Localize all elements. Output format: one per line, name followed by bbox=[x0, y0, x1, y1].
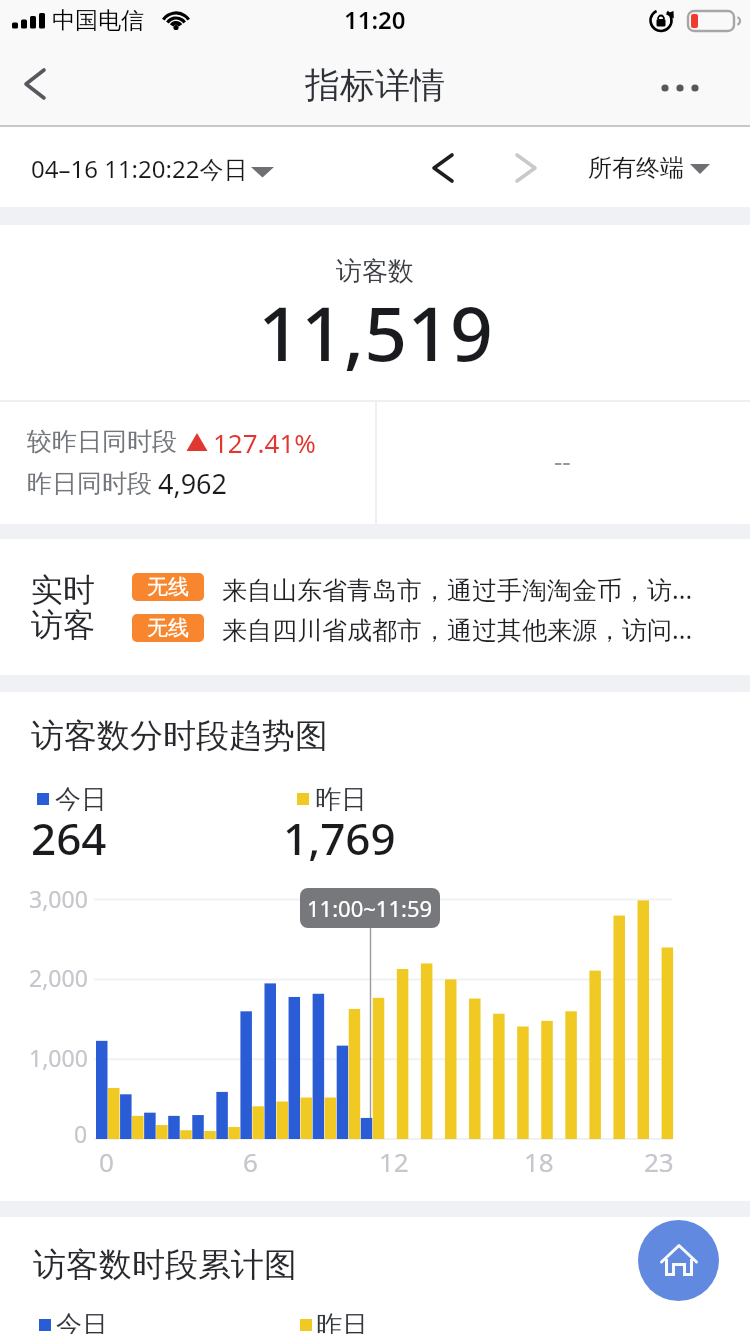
staticText: 4,962 bbox=[158, 465, 228, 502]
staticText: 昨日 bbox=[315, 783, 367, 816]
staticText: 12 bbox=[379, 1144, 409, 1179]
button[interactable] bbox=[120, 568, 730, 606]
staticText: 访客数 bbox=[336, 255, 414, 288]
button[interactable] bbox=[120, 609, 730, 647]
staticText: 来自山东省青岛市，通过手淘淘金币，访... bbox=[222, 572, 693, 606]
staticText: 今日 bbox=[56, 1309, 108, 1334]
button[interactable] bbox=[408, 138, 478, 198]
staticText: 1,000 bbox=[29, 1042, 88, 1073]
button[interactable] bbox=[6, 56, 66, 112]
staticText: 11:00~11:59 bbox=[307, 893, 433, 923]
staticText: 实时 bbox=[31, 570, 95, 610]
staticText: 无线 bbox=[147, 615, 189, 641]
button[interactable] bbox=[655, 64, 719, 108]
staticText: 中国电信 bbox=[52, 6, 144, 35]
staticText: 无线 bbox=[147, 574, 189, 600]
staticText: 所有终端 bbox=[588, 153, 684, 183]
staticText: 昨日 bbox=[316, 1309, 368, 1334]
staticText: 来自四川省成都市，通过其他来源，访问... bbox=[222, 612, 693, 646]
staticText: 较昨日同时段 bbox=[27, 426, 177, 457]
staticText: 04–16 11:20:22今日 bbox=[31, 152, 248, 185]
staticText: 11:20 bbox=[344, 3, 406, 36]
staticText: 264 bbox=[31, 808, 107, 868]
staticText: 2,000 bbox=[29, 962, 88, 993]
button[interactable] bbox=[492, 138, 562, 198]
staticText: 3,000 bbox=[29, 883, 88, 914]
staticText: 127.41% bbox=[213, 425, 316, 460]
button[interactable] bbox=[16, 133, 291, 203]
staticText: 0 bbox=[74, 1118, 88, 1149]
staticText: 0 bbox=[99, 1144, 114, 1179]
button[interactable] bbox=[575, 133, 735, 203]
staticText: 6 bbox=[243, 1144, 258, 1179]
staticText: 指标详情 bbox=[305, 63, 445, 107]
button[interactable] bbox=[638, 1220, 719, 1301]
staticText: 11,519 bbox=[258, 281, 493, 383]
staticText: 访客 bbox=[31, 605, 95, 645]
staticText: 昨日同时段 bbox=[27, 468, 152, 499]
staticText: 23 bbox=[644, 1144, 674, 1179]
staticText: 今日 bbox=[55, 783, 107, 816]
staticText: 1,769 bbox=[283, 808, 396, 868]
staticText: 访客数时段累计图 bbox=[33, 1244, 297, 1286]
staticText: -- bbox=[554, 443, 571, 478]
staticText: 访客数分时段趋势图 bbox=[31, 715, 328, 757]
staticText: 18 bbox=[524, 1144, 554, 1179]
